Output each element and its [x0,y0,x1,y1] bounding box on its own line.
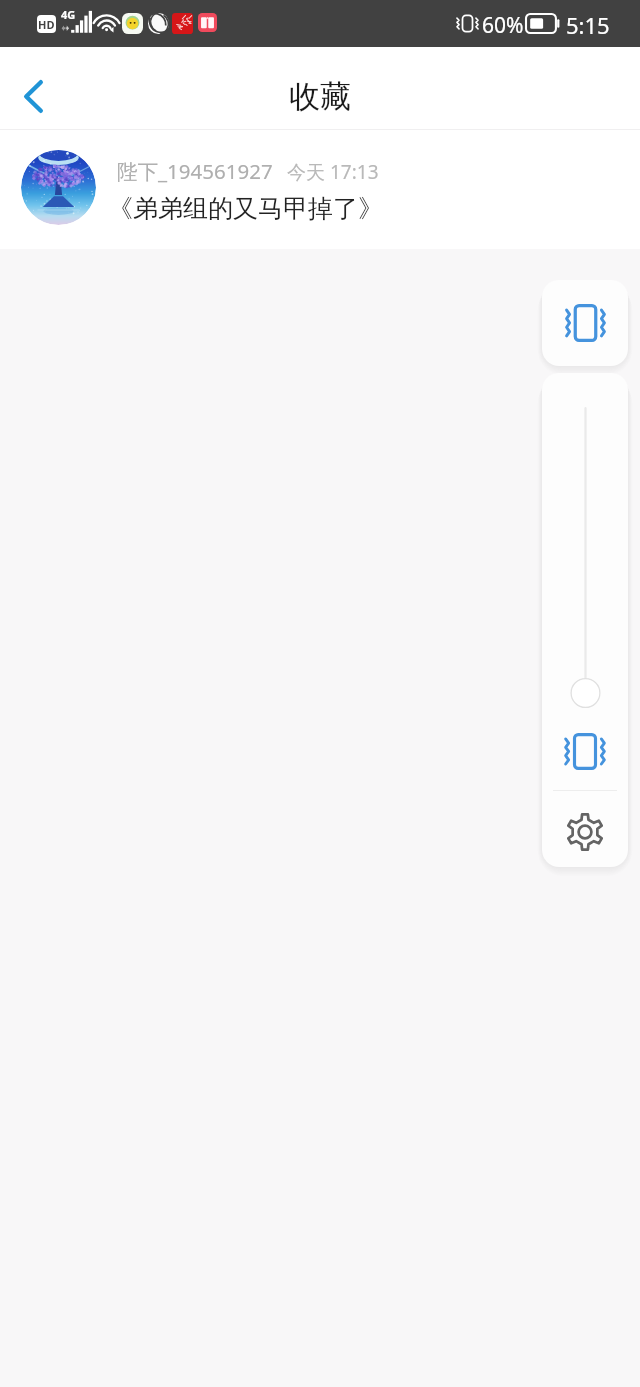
staticText: 60% [482,11,524,40]
staticText: 5:15 [566,10,610,40]
staticText: 今天 17:13 [287,159,379,185]
staticText: 《弟弟组的又马甲掉了》 [108,193,383,224]
button[interactable]: Settings [566,801,604,863]
button[interactable]: Back [5,68,61,124]
staticText: 收藏 [289,77,351,116]
staticText: 陛下_194561927 [117,157,273,185]
staticText: HD [38,17,55,32]
staticText: 4G [61,7,76,22]
button[interactable]: Vibrate [542,280,628,366]
button[interactable]: User avatar [0,130,640,249]
button[interactable]: Vibration intensity slider [560,397,610,709]
button[interactable]: Vibration strength [564,723,606,779]
button[interactable]: User avatar [21,150,96,225]
